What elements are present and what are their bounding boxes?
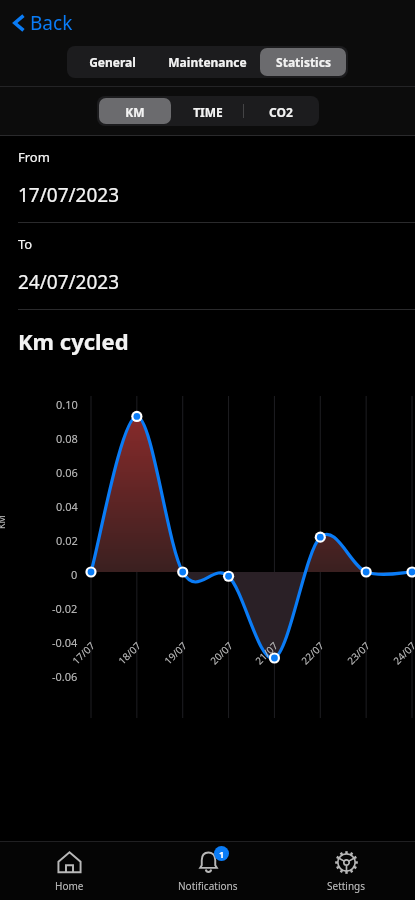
staticText: 0.08 <box>56 431 78 446</box>
staticText: To <box>18 235 33 253</box>
staticText: 0.10 <box>56 397 78 412</box>
staticText: 1 <box>219 848 225 860</box>
staticText: 19/07 <box>161 638 190 667</box>
button[interactable]: Maintenance <box>155 48 260 76</box>
staticText: From <box>18 148 50 166</box>
staticText: Km cycled <box>18 326 129 356</box>
button[interactable]: CO2 <box>244 98 317 124</box>
staticText: Home <box>55 879 84 893</box>
staticText: 18/07 <box>115 638 144 667</box>
staticText: Maintenance <box>168 54 247 70</box>
button[interactable]: To <box>0 223 415 309</box>
staticText: -0.04 <box>52 635 78 650</box>
staticText: 17/07 <box>69 638 98 667</box>
staticText: Statistics <box>276 54 331 70</box>
staticText: 24/07/2023 <box>18 269 120 295</box>
staticText: General <box>89 54 136 70</box>
staticText: 17/07/2023 <box>18 182 120 208</box>
button[interactable]: TIME <box>171 98 244 124</box>
staticText: -0.02 <box>52 601 78 616</box>
staticText: 0.02 <box>56 533 78 548</box>
staticText: 22/07 <box>298 638 327 667</box>
button[interactable]: Back <box>0 0 415 46</box>
button[interactable]: General <box>69 48 155 76</box>
staticText: 23/07 <box>344 638 373 667</box>
button[interactable]: Settings <box>277 842 415 900</box>
staticText: 21/07 <box>252 638 281 667</box>
staticText: Notifications <box>178 879 238 893</box>
staticText: 20/07 <box>207 638 236 667</box>
button[interactable]: From <box>0 136 415 222</box>
staticText: KM <box>0 515 7 529</box>
button[interactable]: Statistics <box>260 48 346 76</box>
staticText: 24/07 <box>390 638 415 667</box>
button[interactable]: KM <box>99 98 171 124</box>
staticText: CO2 <box>269 104 293 118</box>
staticText: Settings <box>327 879 366 893</box>
staticText: 0.06 <box>56 465 78 480</box>
staticText: 0 <box>71 567 78 582</box>
staticText: TIME <box>193 104 223 118</box>
staticText: Back <box>30 10 73 36</box>
staticText: -0.06 <box>52 669 78 684</box>
button[interactable]: Notifications <box>139 842 277 900</box>
button[interactable]: Home <box>0 842 139 900</box>
staticText: 0.04 <box>56 499 78 514</box>
staticText: KM <box>125 104 145 118</box>
